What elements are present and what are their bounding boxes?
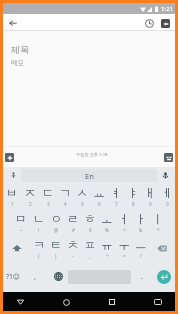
button[interactable]: ㅅ — [73, 183, 90, 209]
button[interactable]: Change language — [48, 261, 68, 292]
button[interactable]: Hide keyboard — [164, 153, 173, 162]
button[interactable]: Add image — [157, 15, 173, 31]
staticText: ㅔ — [161, 185, 173, 200]
staticText: ~ — [20, 227, 23, 233]
button[interactable]: ㅡ — [132, 235, 149, 261]
button[interactable]: , — [22, 261, 48, 292]
staticText: / — [140, 253, 142, 259]
staticText: 6 — [98, 201, 101, 207]
button[interactable]: Keyboard settings — [7, 169, 19, 181]
staticText: ㅈ — [24, 185, 36, 200]
staticText: ㅅ — [76, 185, 88, 200]
staticText: ㅛ — [93, 185, 105, 200]
button[interactable]: ㅋ — [30, 235, 47, 261]
button[interactable]: ㅈ — [21, 183, 39, 209]
button[interactable]: ㅌ — [47, 235, 64, 261]
staticText: 8 — [132, 201, 135, 207]
staticText: ) — [55, 253, 57, 259]
button[interactable]: ㅜ — [115, 235, 132, 261]
staticText: - — [72, 253, 74, 259]
staticText: ㅂ — [6, 185, 18, 200]
staticText: ㅍ — [84, 237, 96, 252]
button[interactable]: ㅓ — [115, 209, 132, 235]
staticText: ㄹ — [67, 211, 79, 226]
staticText: ㅎ — [84, 211, 96, 226]
staticText: 1:21 — [161, 5, 173, 13]
staticText: ^ — [123, 227, 126, 233]
button[interactable]: ㅍ — [81, 235, 98, 261]
staticText: ㅋ — [33, 237, 45, 252]
staticText: ㅊ — [67, 237, 79, 252]
staticText: @ — [54, 227, 59, 233]
staticText: , — [34, 271, 37, 281]
staticText: En — [85, 171, 94, 181]
staticText: ( — [38, 253, 40, 259]
button[interactable]: Back — [11, 293, 29, 311]
button[interactable]: ㅂ — [3, 183, 21, 209]
button[interactable]: ㅠ — [98, 235, 115, 261]
staticText: ?1☺ — [6, 272, 20, 281]
button[interactable]: Voice input — [159, 169, 171, 181]
staticText: ㅌ — [50, 237, 62, 252]
button[interactable]: Back — [5, 15, 21, 31]
staticText: ㅠ — [101, 237, 113, 252]
staticText: ㅑ — [127, 185, 139, 200]
button[interactable]: ㄴ — [30, 209, 47, 235]
button[interactable]: ㅊ — [64, 235, 81, 261]
button[interactable]: Recent apps — [103, 293, 121, 311]
staticText: ㅇ — [50, 211, 62, 226]
staticText: ㅐ — [144, 185, 156, 200]
button[interactable]: Shift — [3, 235, 30, 261]
button[interactable]: Set reminder — [141, 15, 157, 31]
staticText: 메모 — [11, 59, 24, 67]
button[interactable]: Add attachment — [5, 153, 14, 162]
button[interactable]: ㅏ — [132, 209, 149, 235]
button[interactable]: Switch keyboard — [149, 293, 167, 311]
button[interactable]: ㄷ — [39, 183, 56, 209]
staticText: 1 — [11, 201, 14, 207]
staticText: * — [157, 227, 160, 233]
staticText: ㄴ — [33, 211, 45, 226]
button[interactable]: En — [21, 169, 157, 182]
staticText: + — [106, 253, 109, 259]
button[interactable]: ?1☺ — [3, 261, 22, 292]
staticText: _ — [89, 253, 92, 259]
staticText: 0 — [166, 201, 169, 207]
staticText: % — [105, 227, 109, 233]
staticText: ㅣ — [152, 211, 164, 226]
staticText: 7 — [115, 201, 118, 207]
button[interactable]: Backspace — [149, 235, 175, 261]
staticText: ㅜ — [118, 237, 130, 252]
button[interactable]: ㅗ — [98, 209, 115, 235]
staticText: 9 — [149, 201, 152, 207]
button[interactable]: ㅎ — [81, 209, 98, 235]
button[interactable]: ㅑ — [124, 183, 141, 209]
staticText: ㅏ — [135, 211, 147, 226]
staticText: ㄱ — [59, 185, 71, 200]
button[interactable]: ㅁ — [12, 209, 30, 235]
staticText: 2 — [29, 201, 32, 207]
staticText: ㅕ — [110, 185, 122, 200]
button[interactable]: ㅛ — [90, 183, 107, 209]
button[interactable]: ㅔ — [158, 183, 175, 209]
button[interactable]: ㄱ — [56, 183, 73, 209]
button[interactable]: ㄹ — [64, 209, 81, 235]
button[interactable]: ㅕ — [107, 183, 124, 209]
staticText: ㄷ — [42, 185, 54, 200]
staticText: . — [141, 271, 144, 281]
staticText: $ — [89, 227, 92, 233]
staticText: = — [123, 253, 126, 259]
button[interactable]: Enter — [157, 270, 171, 284]
button[interactable]: ㅐ — [141, 183, 158, 209]
staticText: 수정한 오후 1:18 — [76, 152, 108, 158]
staticText: 4 — [64, 201, 67, 207]
button[interactable]: ㅣ — [149, 209, 166, 235]
staticText: ㅡ — [135, 237, 147, 252]
staticText: 3 — [47, 201, 50, 207]
button[interactable]: Home — [57, 293, 75, 311]
button[interactable]: ㅇ — [47, 209, 64, 235]
staticText: & — [139, 227, 143, 233]
staticText: ㅓ — [118, 211, 130, 226]
